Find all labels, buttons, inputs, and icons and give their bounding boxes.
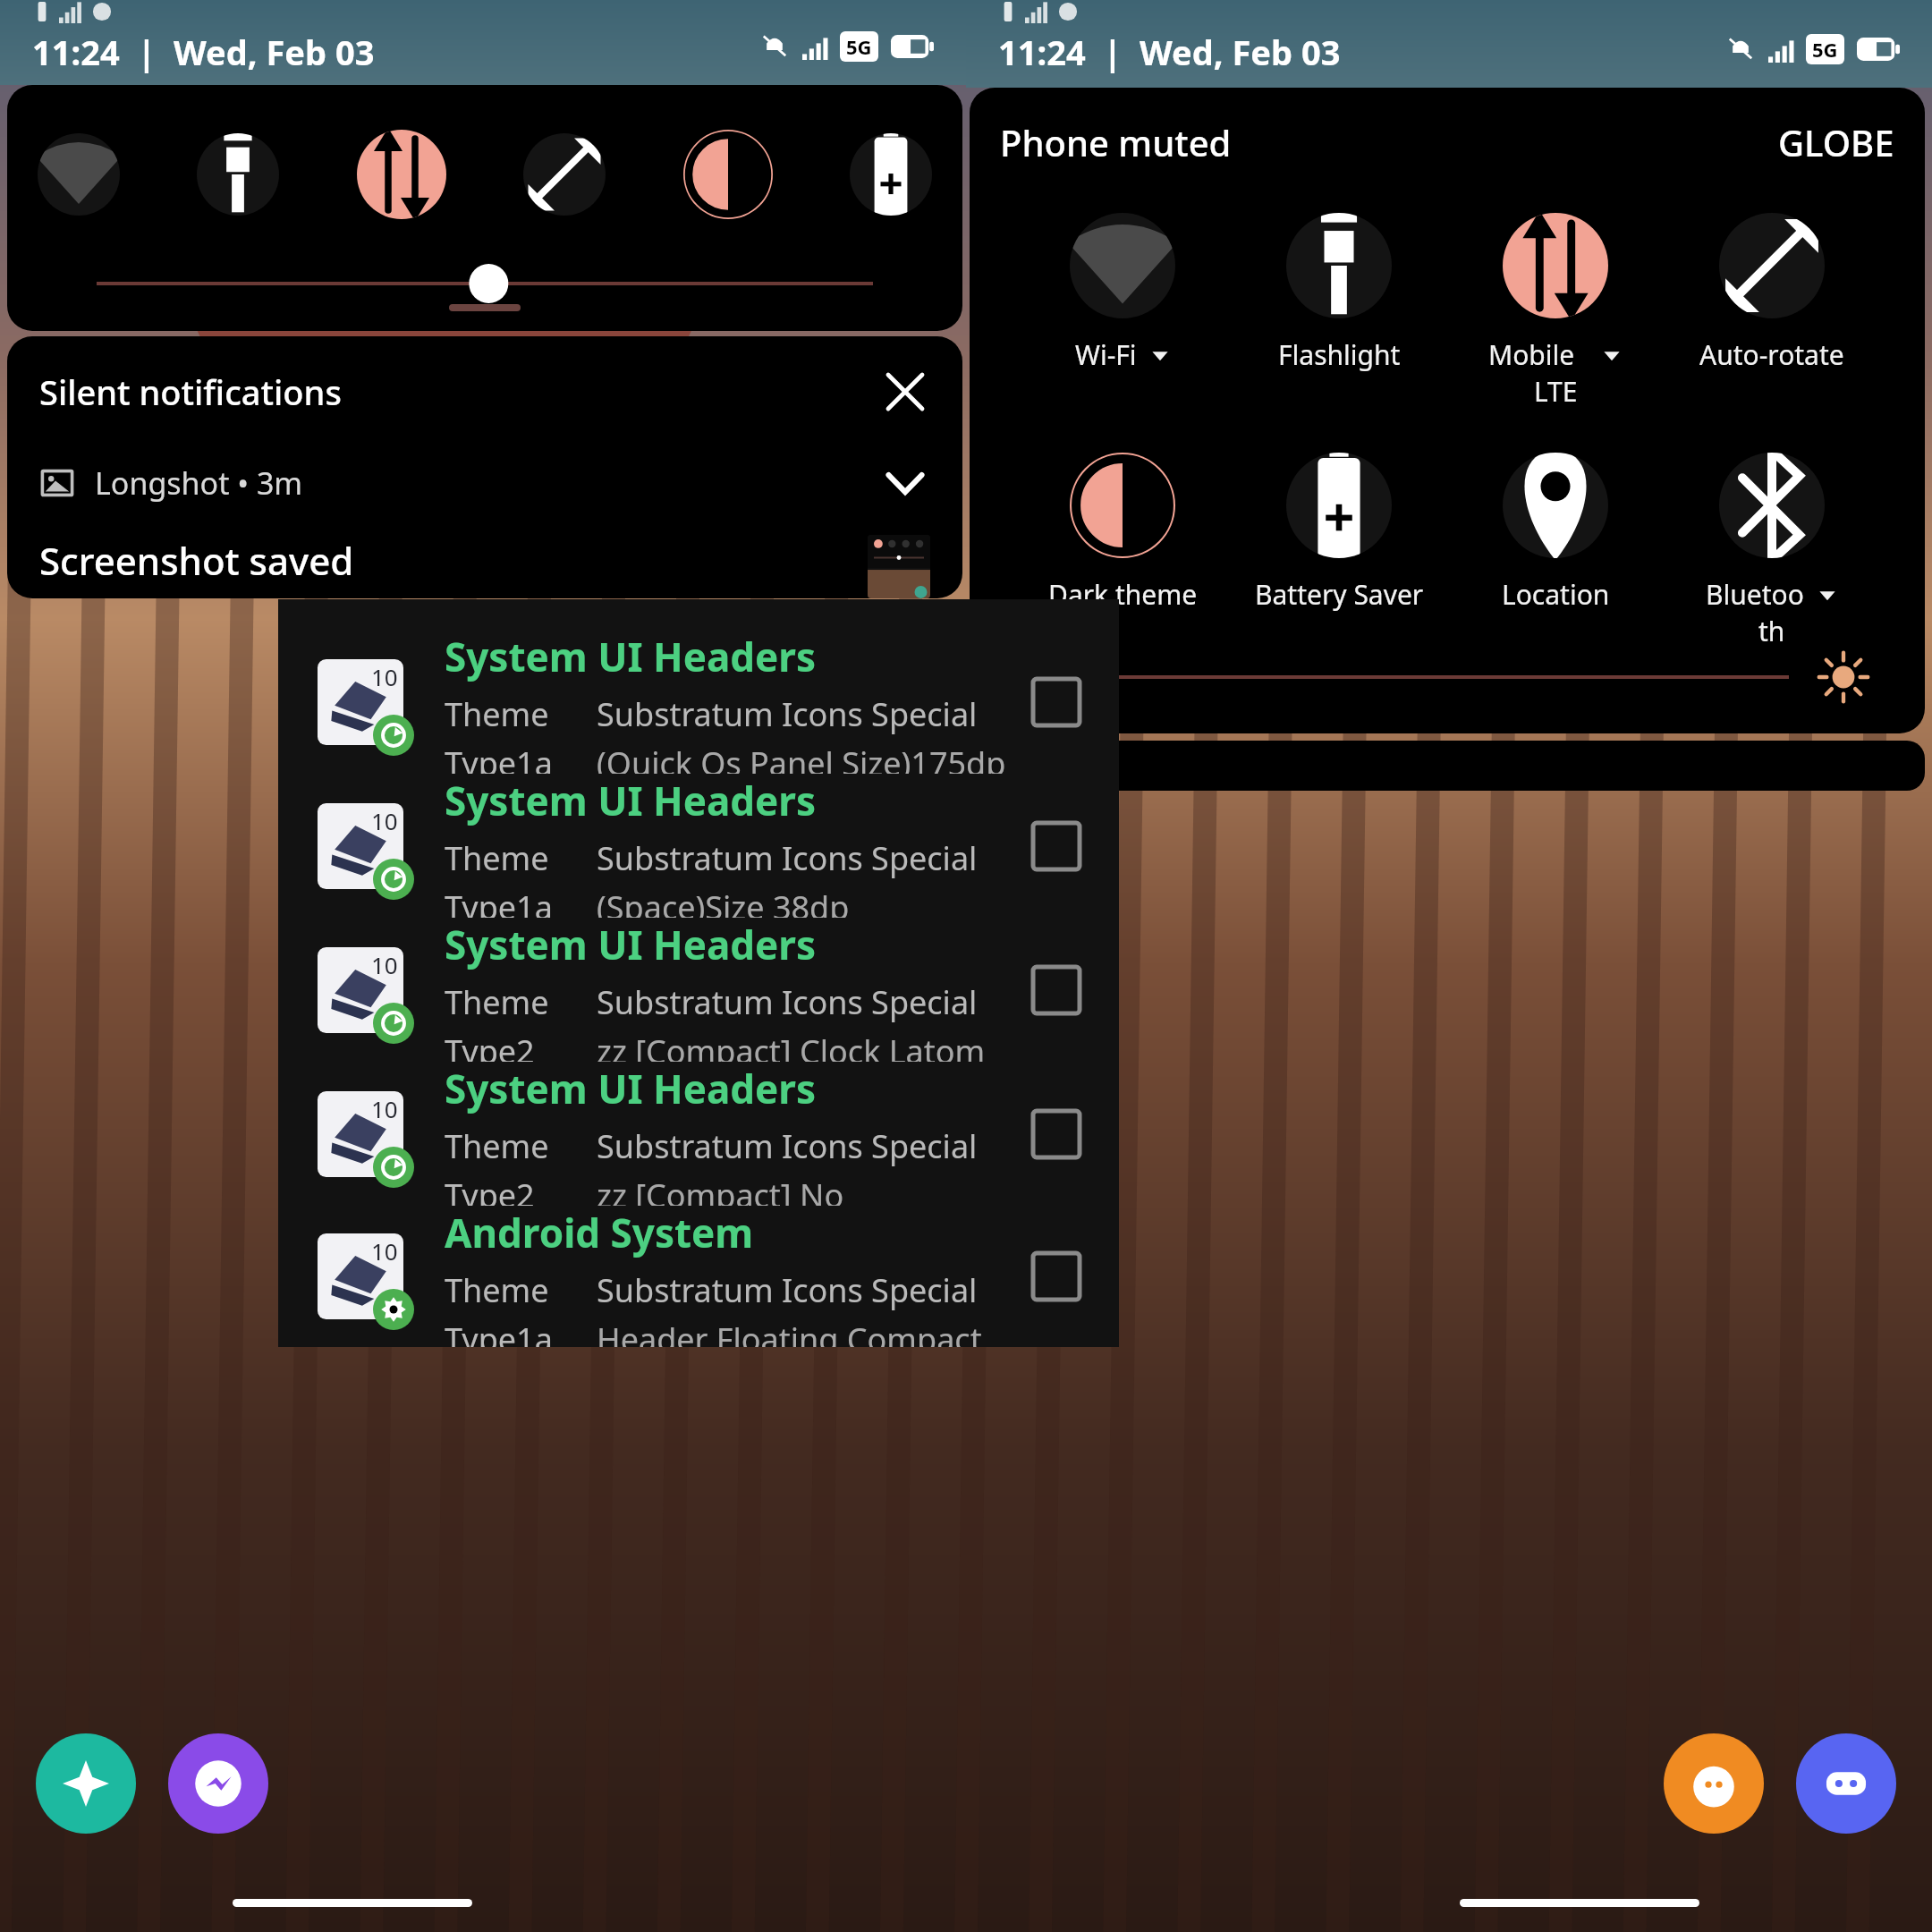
staticText: Substratum Icons Special (1.13) bbox=[597, 1124, 1012, 1168]
staticText: Location bbox=[1502, 576, 1610, 613]
staticText: 10 bbox=[371, 661, 398, 692]
button[interactable]: Select System UI Headers bbox=[1033, 679, 1080, 725]
staticText: Silent notifications bbox=[39, 369, 342, 415]
staticText: zz [Compact] Clock Latom bbox=[597, 1030, 986, 1062]
staticText: Theme bbox=[445, 980, 597, 1024]
button[interactable]: Phone muted bbox=[1000, 118, 1232, 166]
button[interactable]: Mobile data bbox=[357, 130, 446, 219]
staticText: Longshot • 3m bbox=[95, 462, 303, 504]
button[interactable]: Dismiss bbox=[880, 367, 930, 417]
button[interactable]: Expand bbox=[880, 458, 930, 508]
staticText: Wi-Fi bbox=[1075, 336, 1137, 373]
staticText: (Quick Qs Panel Size)175dp bbox=[597, 741, 1006, 774]
staticText: 10 bbox=[371, 1093, 398, 1124]
staticText: Type2 bbox=[445, 1030, 597, 1062]
button[interactable]: Battery Saver bbox=[850, 133, 932, 216]
staticText: Theme bbox=[445, 836, 597, 880]
staticText: Substratum Icons Special (1.13) bbox=[597, 1268, 1012, 1312]
staticText: 5G bbox=[846, 33, 872, 60]
button[interactable]: 10 bbox=[278, 1062, 1119, 1206]
staticText: Play Store bbox=[1753, 506, 1878, 543]
button[interactable]: 10 bbox=[278, 1206, 1119, 1347]
button[interactable]: Wi-Fi bbox=[1038, 213, 1207, 373]
staticText: Header Floating Compact bbox=[597, 1318, 982, 1347]
staticText: 10 bbox=[371, 1235, 398, 1267]
staticText: Theme bbox=[445, 1124, 597, 1168]
button[interactable]: Dark theme bbox=[683, 130, 773, 219]
staticText: Type1a bbox=[445, 1318, 597, 1347]
staticText: Bluetoo bbox=[1706, 576, 1804, 613]
staticText: 5G bbox=[1812, 36, 1838, 63]
staticText: Type2 bbox=[445, 1174, 597, 1206]
staticText: Type1a bbox=[445, 741, 597, 774]
button[interactable]: Auto-rotate bbox=[1687, 213, 1857, 373]
button[interactable]: Flashlight bbox=[1254, 213, 1424, 373]
staticText: Substratum Icons Special (1.13) bbox=[597, 980, 1012, 1024]
button[interactable]: Auto-rotate bbox=[523, 133, 606, 216]
staticText: Theme bbox=[445, 1268, 597, 1312]
staticText: Substratum Icons Special (1.13) bbox=[597, 836, 1012, 880]
staticText: zz [Compact] No Brigthness QQS bbox=[597, 1174, 1012, 1206]
button[interactable]: Flashlight bbox=[197, 133, 279, 216]
staticText: 11:24 | Wed, Feb 03 bbox=[32, 29, 375, 75]
staticText: Flashlight bbox=[1278, 336, 1401, 373]
button[interactable]: Mobile bbox=[1470, 213, 1640, 410]
button[interactable]: 10 bbox=[278, 918, 1119, 1062]
button[interactable]: Auto brightness bbox=[1816, 649, 1871, 705]
button[interactable]: GLOBE bbox=[1778, 118, 1894, 166]
staticText: Screenshot saved bbox=[39, 535, 354, 586]
staticText: System UI Headers bbox=[445, 630, 817, 683]
button[interactable]: Location bbox=[1470, 453, 1640, 613]
staticText: Substratum Icons Special (1.13) bbox=[597, 692, 1012, 736]
button[interactable]: Select System UI Headers bbox=[1033, 967, 1080, 1013]
button[interactable]: Select System UI Headers bbox=[1033, 823, 1080, 869]
staticText: System UI Headers bbox=[445, 774, 817, 827]
button[interactable]: 10 bbox=[278, 774, 1119, 918]
staticText: 10 bbox=[371, 949, 398, 980]
button[interactable]: 10 bbox=[278, 630, 1119, 774]
staticText: 11:24 | Wed, Feb 03 bbox=[998, 29, 1341, 75]
button[interactable]: Bluetoo bbox=[1687, 453, 1857, 649]
button[interactable]: Select System UI Headers bbox=[1033, 1111, 1080, 1157]
staticText: (Space)Size 38dp bbox=[597, 885, 850, 918]
staticText: System UI Headers bbox=[445, 918, 817, 971]
staticText: Dark theme bbox=[1048, 576, 1198, 613]
button[interactable]: Wi-Fi bbox=[38, 133, 120, 216]
staticText: System UI Headers bbox=[445, 1062, 817, 1115]
staticText: Auto-rotate bbox=[1699, 336, 1844, 373]
button[interactable]: Battery Saver bbox=[1254, 453, 1424, 613]
button[interactable]: Select Android System bbox=[1033, 1253, 1080, 1300]
staticText: 10 bbox=[371, 805, 398, 836]
staticText: th bbox=[1758, 613, 1785, 649]
button[interactable]: Dark theme bbox=[1038, 453, 1207, 613]
staticText: Mobile bbox=[1488, 336, 1589, 373]
staticText: LTE bbox=[1534, 373, 1578, 410]
staticText: Battery Saver bbox=[1255, 576, 1424, 613]
staticText: Theme bbox=[445, 692, 597, 736]
staticText: Android System bbox=[445, 1206, 754, 1259]
staticText: Type1a bbox=[445, 885, 597, 918]
